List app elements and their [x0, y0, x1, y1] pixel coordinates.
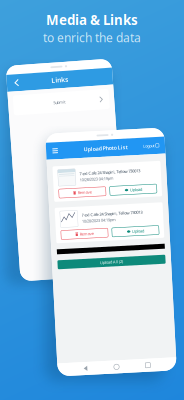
staticText: 10/28/2023 04:19pm	[83, 217, 117, 222]
staticText: 10/28/2023 04:19pm	[83, 176, 117, 181]
staticText: 7 exl Cafe 24 Shapiri, Tellow 730013	[83, 211, 144, 216]
staticText: to enrich the data	[43, 30, 141, 46]
staticText: Logout	[149, 145, 160, 151]
staticText: Links	[57, 75, 74, 84]
staticText: Upload	[133, 230, 145, 235]
staticText: Remove	[81, 230, 95, 235]
button[interactable]: Remove	[62, 186, 109, 195]
staticText: Media & Links	[46, 11, 138, 29]
staticText: Remove	[81, 188, 95, 194]
button[interactable]: Submit	[18, 92, 114, 112]
staticText: Upload	[133, 188, 145, 194]
button[interactable]: Upload	[113, 228, 160, 237]
button[interactable]: Remove	[62, 228, 109, 237]
staticText: 7 exl Cafe 24 Shapiri, Tellow 730013	[83, 169, 144, 175]
staticText: Submit	[58, 99, 70, 105]
button[interactable]: Upload	[113, 186, 160, 195]
staticText: Upload Photo List	[89, 144, 133, 152]
staticText: Upload All (2)	[99, 259, 122, 265]
button[interactable]: Upload All (2)	[57, 257, 165, 266]
button[interactable]: Logout	[149, 145, 164, 151]
